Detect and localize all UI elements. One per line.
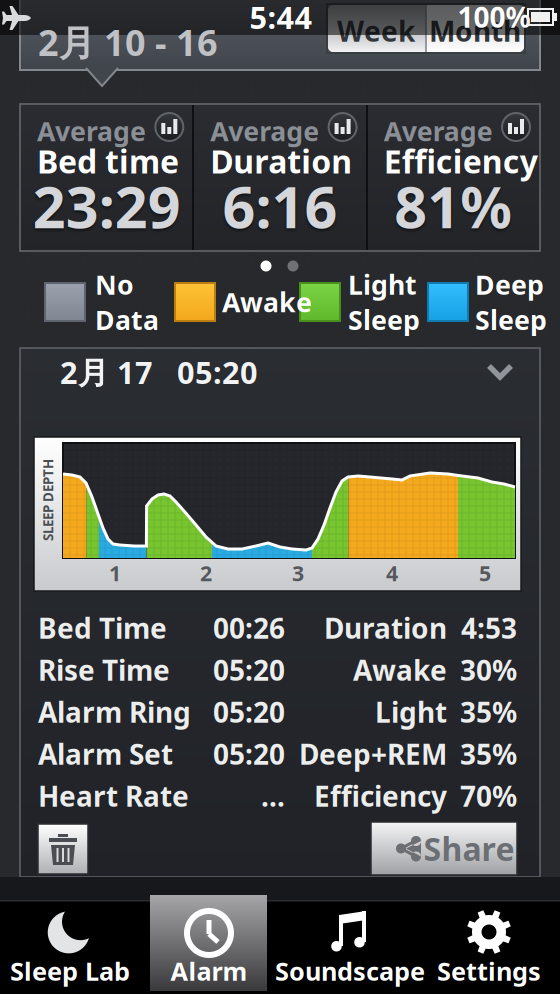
staticText: Share <box>423 827 514 870</box>
button[interactable]: Month <box>426 4 525 53</box>
staticText: Heart Rate <box>38 777 189 815</box>
button[interactable]: Delete <box>38 824 88 874</box>
staticText: Bed time <box>37 140 179 182</box>
staticText: 05:20 <box>213 693 285 731</box>
staticText: Average <box>210 113 319 149</box>
staticText: Deep <box>475 267 544 302</box>
button[interactable]: Statistics <box>0 0 560 994</box>
staticText: 05:20 <box>213 651 285 689</box>
staticText: Sleep <box>475 302 547 337</box>
staticText: Bed Time <box>38 609 167 647</box>
button[interactable]: Week <box>327 4 426 53</box>
staticText: 4 <box>386 559 398 587</box>
staticText: Alarm Ring <box>38 693 191 731</box>
staticText: 6:16 <box>222 168 337 244</box>
staticText: Sleep <box>348 302 420 337</box>
staticText: 2 <box>200 559 212 587</box>
staticText: 00:26 <box>213 609 285 647</box>
button[interactable]: Settings <box>419 900 559 994</box>
button[interactable]: Sleep Lab <box>0 900 140 994</box>
staticText: 05:20 <box>213 735 285 773</box>
staticText: 4:53 <box>461 609 517 647</box>
staticText: Settings <box>437 954 541 988</box>
button[interactable]: Alarm <box>139 900 279 994</box>
staticText: ... <box>261 777 285 815</box>
staticText: No <box>95 267 134 302</box>
staticText: 23:29 <box>33 168 181 244</box>
staticText: 35% <box>460 693 517 731</box>
staticText: Awake <box>222 284 312 320</box>
staticText: Month <box>429 12 521 50</box>
staticText: Deep+REM <box>299 735 447 773</box>
staticText: Efficiency <box>314 777 447 815</box>
staticText: Sleep Lab <box>10 954 130 988</box>
staticText: Duration <box>324 609 447 647</box>
staticText: 3 <box>292 559 304 587</box>
staticText: 1 <box>109 559 121 587</box>
staticText: 35% <box>460 735 517 773</box>
staticText: SLEEP DEPTH <box>7 491 89 509</box>
staticText: 2月 17 05:20 <box>60 352 258 392</box>
button[interactable]: Share <box>371 822 517 875</box>
button[interactable]: 2月 17 05:20 <box>20 348 540 398</box>
staticText: 5 <box>479 559 491 587</box>
staticText: Duration <box>210 140 352 182</box>
staticText: 5:44 <box>249 0 312 37</box>
staticText: Light <box>375 693 447 731</box>
staticText: 81% <box>394 168 512 244</box>
staticText: Light <box>348 267 417 302</box>
button[interactable]: Statistics <box>0 0 560 994</box>
staticText: Efficiency <box>384 140 538 182</box>
staticText: 100% <box>457 0 530 36</box>
staticText: Average <box>384 113 493 149</box>
button[interactable]: Soundscape <box>280 900 420 994</box>
staticText: 30% <box>460 651 517 689</box>
staticText: Data <box>95 302 159 337</box>
staticText: Soundscape <box>275 954 425 988</box>
staticText: Alarm Set <box>38 735 173 773</box>
staticText: Average <box>37 113 146 149</box>
staticText: Week <box>337 12 415 50</box>
staticText: 2月 10 - 16 <box>38 18 218 66</box>
staticText: Rise Time <box>38 651 170 689</box>
button[interactable]: Statistics <box>0 0 560 994</box>
staticText: Awake <box>353 651 447 689</box>
staticText: 70% <box>460 777 517 815</box>
staticText: Alarm <box>170 954 247 988</box>
